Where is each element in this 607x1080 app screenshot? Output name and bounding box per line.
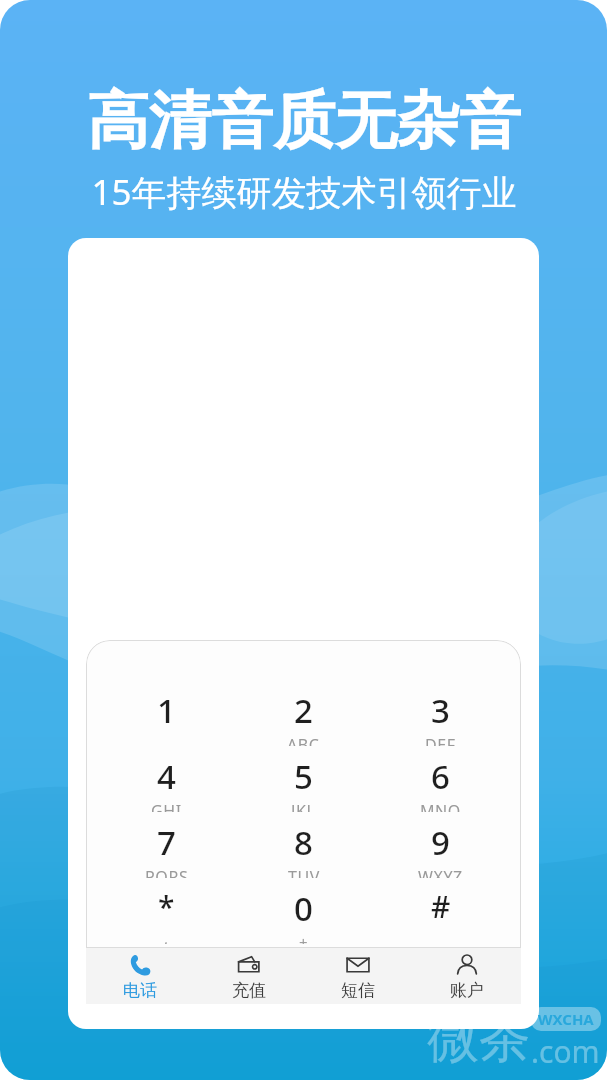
staticText: 3	[431, 688, 450, 733]
staticText: 2	[294, 688, 313, 733]
button[interactable]: 账户	[412, 948, 521, 1004]
staticText: 0	[294, 886, 313, 931]
staticText: DEF	[425, 734, 456, 746]
button[interactable]: 1	[98, 688, 235, 746]
button[interactable]: *	[98, 886, 235, 944]
button[interactable]: 充值	[194, 948, 303, 1004]
button[interactable]: 0	[235, 886, 372, 944]
staticText: 账户	[450, 980, 484, 1001]
staticText: WXYZ	[418, 866, 463, 878]
staticText: ABC	[287, 734, 320, 746]
button[interactable]: 6	[372, 754, 509, 812]
staticText: 充值	[232, 980, 266, 1001]
staticText: 8	[294, 820, 313, 865]
button[interactable]: 5	[235, 754, 372, 812]
button[interactable]: 7	[98, 820, 235, 878]
staticText: MNO	[420, 800, 461, 812]
staticText: 5	[294, 754, 313, 799]
staticText: 15年持续研发技术引领行业	[91, 168, 517, 216]
button[interactable]: 电话	[86, 948, 194, 1004]
button[interactable]: #	[372, 886, 509, 944]
button[interactable]: 9	[372, 820, 509, 878]
staticText: #	[431, 886, 451, 927]
staticText: *	[158, 886, 175, 927]
staticText: JKL	[291, 800, 316, 812]
staticText: 1	[157, 688, 176, 733]
staticText: +	[299, 932, 309, 944]
staticText: 9	[431, 820, 450, 865]
staticText: TUV	[288, 866, 320, 878]
staticText: 高清音质无杂音	[87, 82, 521, 160]
staticText: WXCHA	[538, 1009, 594, 1029]
staticText: 4	[157, 754, 176, 799]
staticText: 短信	[341, 980, 375, 1001]
button[interactable]: 2	[235, 688, 372, 746]
staticText: 6	[431, 754, 450, 799]
button[interactable]: 3	[372, 688, 509, 746]
button[interactable]: 4	[98, 754, 235, 812]
button[interactable]: 8	[235, 820, 372, 878]
staticText: 7	[157, 820, 176, 865]
staticText: 电话	[123, 980, 157, 1001]
staticText: ,	[164, 928, 169, 944]
staticText: PQRS	[145, 866, 189, 878]
button[interactable]: 短信	[303, 948, 412, 1004]
staticText: 微茶	[427, 1006, 531, 1072]
staticText: .com	[531, 1031, 600, 1072]
staticText: GHI	[151, 800, 182, 812]
